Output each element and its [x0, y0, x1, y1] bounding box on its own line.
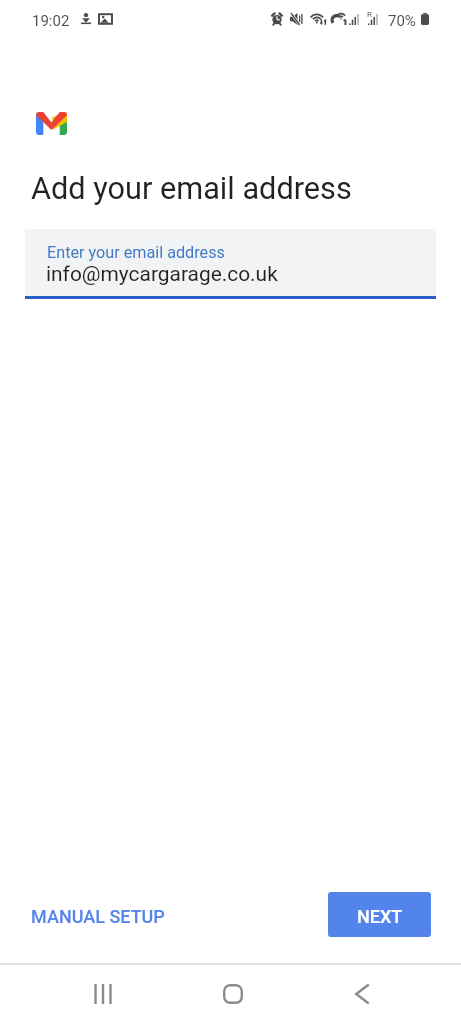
button[interactable]: Enter your email address	[25, 229, 436, 299]
button[interactable]: Back	[332, 964, 392, 1024]
staticText: 70%	[388, 12, 416, 30]
staticText: Add your email address	[31, 171, 352, 207]
button[interactable]: NEXT	[328, 892, 431, 937]
staticText: Enter your email address	[47, 243, 225, 262]
staticText: 19:02	[32, 12, 70, 30]
staticText: MANUAL SETUP	[31, 906, 165, 927]
staticText: R	[367, 10, 372, 19]
button[interactable]: MANUAL SETUP	[20, 896, 176, 937]
button[interactable]: Home	[203, 964, 263, 1024]
button[interactable]: Recent apps	[73, 964, 133, 1024]
staticText: NEXT	[357, 906, 403, 927]
staticText: info@mycargarage.co.uk	[46, 262, 278, 286]
